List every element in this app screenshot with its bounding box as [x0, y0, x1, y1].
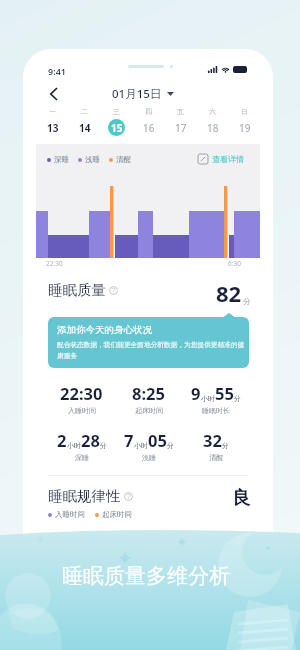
staticText: 深睡 [54, 155, 69, 164]
staticText: 三 [113, 107, 120, 116]
staticText: 6:30 [228, 259, 241, 268]
staticText: 分 [243, 297, 251, 306]
staticText: 二 [81, 107, 88, 116]
staticText: 添加你今天的身心状况 [57, 324, 152, 336]
staticText: 2 [57, 429, 67, 451]
staticText: 05 [148, 429, 167, 451]
button[interactable]: 二 [68, 105, 100, 143]
staticText: 22:30 [46, 259, 63, 268]
staticText: 配合状态数据，我们能更全面地分析数据，为您提供更精准的健康服务 [57, 341, 245, 360]
staticText: 日 [241, 107, 248, 116]
staticText: 13 [47, 121, 59, 135]
button[interactable]: 查看详情 [198, 154, 244, 164]
staticText: 8:25 [132, 382, 165, 404]
staticText: 分 [167, 441, 174, 450]
staticText: 查看详情 [212, 154, 244, 164]
staticText: 浅睡 [85, 155, 100, 164]
staticText: 分 [222, 441, 229, 450]
staticText: 良 [232, 486, 251, 509]
staticText: 入睡时间 [68, 406, 96, 415]
staticText: 六 [209, 107, 216, 116]
staticText: 一 [49, 107, 56, 116]
button[interactable]: 四 [132, 105, 164, 143]
button[interactable]: 日 [228, 105, 260, 143]
staticText: 分 [100, 441, 107, 450]
button[interactable]: 五 [164, 105, 196, 143]
staticText: 浅睡 [142, 453, 156, 462]
staticText: 28 [81, 429, 100, 451]
button[interactable]: 三 [100, 105, 132, 143]
staticText: 18 [207, 121, 219, 135]
staticText: 82 [216, 278, 242, 308]
staticText: 睡眠时长 [202, 406, 230, 415]
staticText: 22:30 [60, 382, 103, 404]
staticText: 清醒 [209, 453, 223, 462]
staticText: 01月15日 [112, 86, 162, 102]
staticText: 9:41 [48, 65, 66, 77]
staticText: 19 [239, 121, 251, 135]
staticText: 16 [143, 121, 155, 135]
staticText: 起床时间 [102, 510, 132, 519]
staticText: 小时 [67, 441, 81, 450]
staticText: 入睡时间 [55, 510, 85, 519]
staticText: 四 [145, 107, 152, 116]
button[interactable]: Back [42, 83, 64, 105]
staticText: 分 [234, 394, 241, 403]
staticText: 五 [177, 107, 184, 116]
staticText: 7 [124, 429, 134, 451]
staticText: 睡眠质量 [48, 281, 106, 299]
staticText: 32 [203, 429, 222, 451]
staticText: 小时 [201, 394, 215, 403]
staticText: 小时 [134, 441, 148, 450]
staticText: 睡眠规律性 [48, 487, 121, 505]
staticText: 17 [175, 121, 187, 135]
staticText: 55 [215, 382, 234, 404]
staticText: 14 [79, 121, 91, 135]
button[interactable]: 01月15日 [112, 86, 174, 102]
staticText: 起床时间 [135, 406, 163, 415]
staticText: 深睡 [75, 453, 89, 462]
staticText: 睡眠质量多维分析 [62, 563, 230, 589]
staticText: 清醒 [116, 155, 131, 164]
staticText: 15 [111, 121, 123, 135]
staticText: 9 [191, 382, 201, 404]
button[interactable]: 六 [196, 105, 228, 143]
button[interactable]: 添加你今天的身心状况 [48, 317, 249, 368]
button[interactable]: 一 [36, 105, 68, 143]
